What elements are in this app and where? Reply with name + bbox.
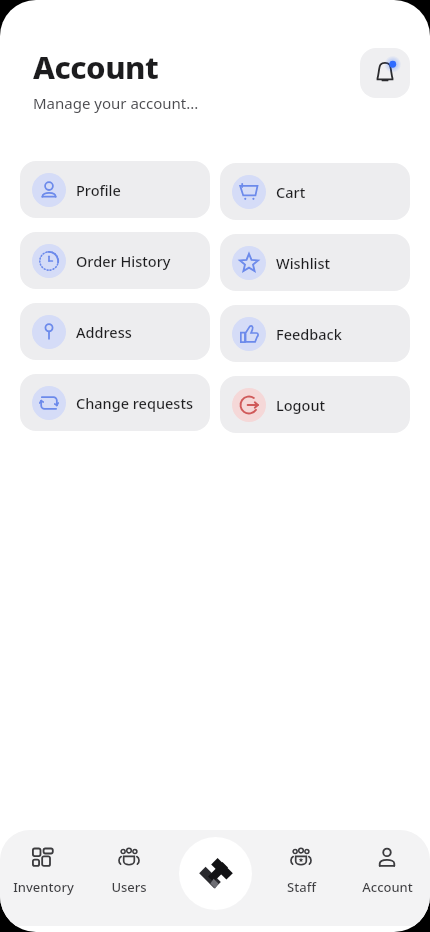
button[interactable]: Profile (20, 161, 210, 218)
button[interactable]: Wishlist (220, 234, 410, 291)
button[interactable]: Feedback (220, 305, 410, 362)
staticText: Account (362, 878, 413, 896)
button[interactable]: Order History (20, 232, 210, 289)
button[interactable]: Address (20, 303, 210, 360)
button[interactable]: Notifications (360, 48, 410, 98)
button[interactable]: Users (86, 844, 172, 926)
button[interactable]: Logout (220, 376, 410, 433)
staticText: Order History (76, 251, 171, 271)
button[interactable]: Staff (258, 844, 344, 926)
button[interactable]: Change requests (20, 374, 210, 431)
staticText: Users (111, 878, 147, 896)
staticText: Profile (76, 180, 121, 200)
button[interactable]: Inventory (0, 844, 86, 926)
staticText: Change requests (76, 393, 193, 413)
staticText: Account (33, 46, 159, 88)
staticText: Cart (276, 182, 306, 202)
button[interactable]: Account (344, 844, 430, 926)
button[interactable]: Cart (220, 163, 410, 220)
button[interactable]: Home (179, 837, 252, 910)
staticText: Inventory (13, 878, 74, 896)
staticText: Manage your account... (33, 93, 199, 113)
staticText: Staff (287, 878, 316, 896)
staticText: Logout (276, 395, 326, 415)
staticText: Wishlist (276, 253, 331, 273)
staticText: Feedback (276, 324, 342, 344)
staticText: Address (76, 322, 132, 342)
